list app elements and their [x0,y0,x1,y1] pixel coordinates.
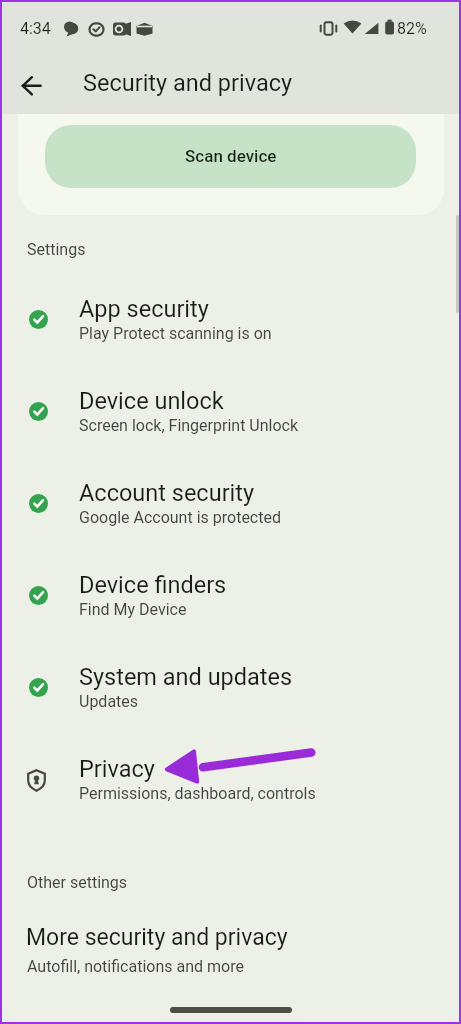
button[interactable]: More security and privacy [0,916,461,992]
button[interactable]: Privacy [0,734,461,826]
staticText: Other settings [27,873,128,892]
staticText: Google Account is protected [79,508,281,527]
staticText: Account security [79,479,255,507]
button[interactable]: Scan device [45,125,416,188]
staticText: System and updates [79,663,293,691]
staticText: Permissions, dashboard, controls [79,784,316,803]
staticText: Device unlock [79,387,224,415]
staticText: Settings [27,240,86,259]
staticText: Privacy [79,755,155,783]
button[interactable]: Account security [0,458,461,550]
staticText: More security and privacy [26,924,288,951]
staticText: Scan device [185,146,277,166]
staticText: Autofill, notifications and more [27,957,244,976]
button[interactable]: System and updates [0,642,461,734]
staticText: 82% [397,19,427,38]
button[interactable]: App security [0,274,461,366]
staticText: Screen lock, Fingerprint Unlock [79,416,299,435]
staticText: 4:34 [20,19,51,38]
staticText: Find My Device [79,600,187,619]
staticText: Security and privacy [83,69,293,97]
button[interactable]: Device unlock [0,366,461,458]
staticText: App security [79,295,209,323]
staticText: Device finders [79,571,227,599]
staticText: Play Protect scanning is on [79,324,272,343]
staticText: Updates [79,692,139,711]
button[interactable]: Device finders [0,550,461,642]
button[interactable] [0,58,461,114]
